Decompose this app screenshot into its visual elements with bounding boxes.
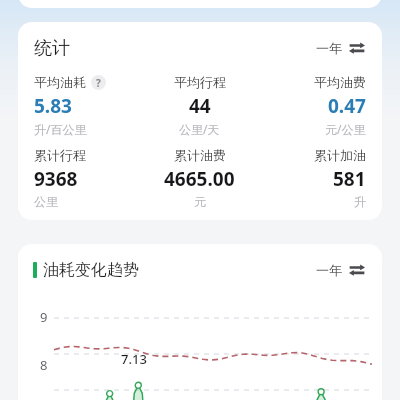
staticText: 平均油费 — [314, 74, 366, 90]
staticText: 统计 — [34, 37, 70, 60]
staticText: 公里 — [34, 194, 58, 209]
staticText: 7.13 — [121, 350, 147, 368]
staticText: 元 — [194, 194, 206, 209]
button[interactable]: 累计油费 — [144, 147, 255, 209]
staticText: 581 — [333, 166, 366, 192]
staticText: 9 — [40, 308, 48, 326]
staticText: 累计加油 — [314, 147, 366, 163]
button[interactable]: 平均行程 — [144, 74, 255, 137]
staticText: 公里/天 — [179, 121, 220, 137]
button[interactable]: 一年 — [313, 258, 368, 282]
staticText: 累计行程 — [34, 147, 86, 163]
staticText: 5.83 — [34, 93, 72, 119]
button[interactable]: 累计加油 — [255, 147, 366, 209]
staticText: 元/公里 — [325, 121, 366, 137]
button[interactable]: 平均油费 — [255, 74, 366, 137]
staticText: 升 — [354, 194, 366, 209]
staticText: 一年 — [316, 262, 342, 278]
staticText: 平均行程 — [174, 74, 226, 90]
staticText: 累计油费 — [174, 147, 226, 163]
staticText: 4665.00 — [164, 166, 235, 192]
staticText: 升/百公里 — [34, 121, 87, 137]
button[interactable]: 帮助 — [91, 75, 106, 90]
staticText: 9368 — [34, 166, 78, 192]
staticText: 一年 — [316, 40, 342, 56]
staticText: 0.47 — [328, 93, 366, 119]
staticText: 44 — [189, 93, 211, 119]
button[interactable]: 累计行程 — [34, 147, 144, 209]
other: 切换 — [349, 40, 365, 56]
other: 切换 — [349, 262, 365, 278]
staticText: 8 — [40, 356, 48, 374]
button[interactable]: 一年 — [313, 36, 368, 60]
staticText: 油耗变化趋势 — [43, 260, 139, 280]
staticText: 平均油耗 — [34, 74, 86, 90]
staticText: ? — [96, 76, 101, 90]
button[interactable]: 平均油耗 — [34, 74, 144, 137]
